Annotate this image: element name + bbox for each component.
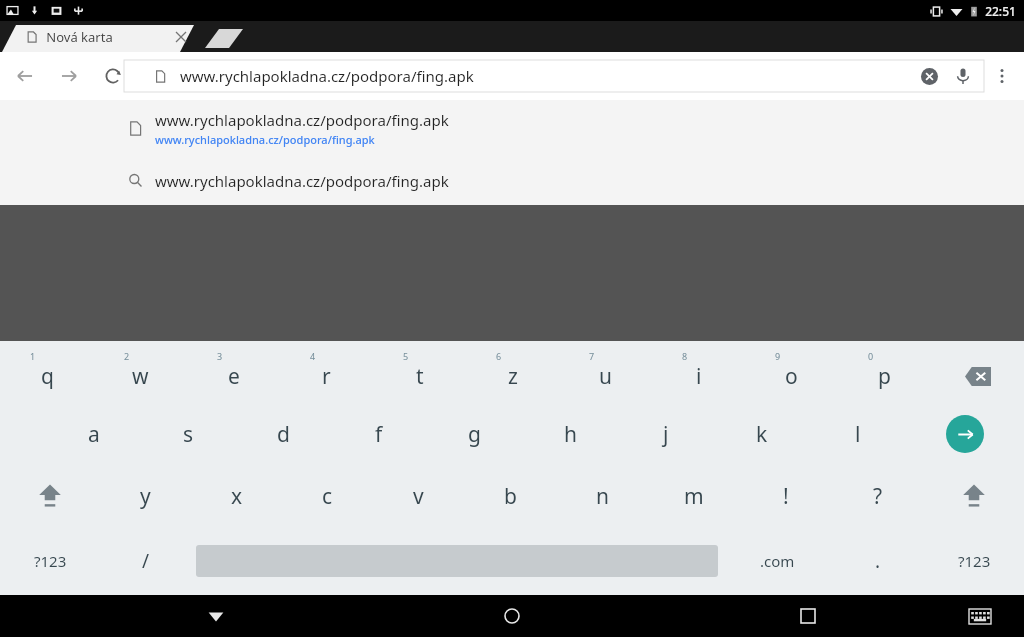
staticText: f xyxy=(375,420,383,449)
staticText: www.rychlapokladna.cz/podpora/fing.apk xyxy=(180,66,474,86)
staticText: g xyxy=(468,420,481,449)
button[interactable]: Close tab xyxy=(171,27,191,47)
staticText: 6 xyxy=(496,350,502,362)
button[interactable]: Backspace xyxy=(931,341,1024,403)
button[interactable]: ?123 xyxy=(0,527,100,595)
staticText: 8 xyxy=(682,350,688,362)
staticText: ? xyxy=(873,482,883,511)
button[interactable]: 8 xyxy=(652,341,745,403)
button[interactable]: h xyxy=(522,403,618,465)
button[interactable]: a xyxy=(46,403,141,465)
button[interactable]: Back xyxy=(192,595,240,637)
button[interactable]: Space xyxy=(192,527,722,595)
staticText: l xyxy=(855,420,861,449)
button[interactable]: 9 xyxy=(745,341,838,403)
button[interactable]: 1 xyxy=(0,341,94,403)
button[interactable]: 2 xyxy=(94,341,187,403)
staticText: u xyxy=(599,362,612,391)
button[interactable]: 6 xyxy=(466,341,559,403)
staticText: Nová karta xyxy=(46,28,113,46)
staticText: p xyxy=(878,362,891,391)
button[interactable]: j xyxy=(618,403,714,465)
staticText: k xyxy=(756,420,768,449)
button[interactable]: ?123 xyxy=(924,527,1024,595)
button[interactable]: 0 xyxy=(838,341,931,403)
button[interactable]: Voice search xyxy=(946,60,980,92)
button[interactable]: / xyxy=(100,527,192,595)
staticText: j xyxy=(663,420,669,449)
staticText: x xyxy=(231,482,243,511)
button[interactable]: Nová karta xyxy=(26,21,191,52)
button[interactable]: www.rychlapokladna.cz/podpora/fing.apk xyxy=(0,156,1024,205)
button[interactable]: n xyxy=(556,465,648,527)
button[interactable]: y xyxy=(100,465,191,527)
button[interactable]: b xyxy=(464,465,556,527)
button[interactable]: Hide keyboard xyxy=(960,596,1000,636)
button[interactable]: www.rychlapokladna.cz/podpora/fing.apk xyxy=(0,100,1024,156)
staticText: 9 xyxy=(775,350,781,362)
staticText: / xyxy=(142,548,150,574)
staticText: a xyxy=(88,420,100,449)
button[interactable]: 3 xyxy=(187,341,280,403)
button[interactable]: More options xyxy=(980,54,1024,98)
button[interactable]: Recent apps xyxy=(784,595,832,637)
button[interactable]: Go xyxy=(906,403,1024,465)
staticText: b xyxy=(504,482,517,511)
button[interactable]: . xyxy=(832,527,924,595)
staticText: y xyxy=(140,482,151,511)
staticText: 2 xyxy=(124,350,130,362)
button[interactable]: d xyxy=(236,403,331,465)
staticText: q xyxy=(41,362,54,391)
staticText: s xyxy=(183,420,194,449)
staticText: z xyxy=(508,362,518,391)
button[interactable]: k xyxy=(714,403,810,465)
button[interactable]: Back xyxy=(8,59,42,93)
button[interactable]: x xyxy=(191,465,282,527)
button[interactable]: Clear xyxy=(912,60,946,92)
staticText: h xyxy=(564,420,577,449)
staticText: 5 xyxy=(403,350,409,362)
staticText: d xyxy=(277,420,290,449)
staticText: o xyxy=(785,362,798,391)
button[interactable]: m xyxy=(648,465,740,527)
staticText: e xyxy=(228,362,240,391)
staticText: 7 xyxy=(589,350,595,362)
button[interactable]: s xyxy=(141,403,236,465)
staticText: . xyxy=(875,548,881,574)
staticText: .com xyxy=(760,551,795,571)
button[interactable]: v xyxy=(373,465,464,527)
staticText: i xyxy=(696,362,702,391)
staticText: v xyxy=(413,482,424,511)
staticText: 4 xyxy=(310,350,316,362)
button[interactable]: g xyxy=(426,403,522,465)
button[interactable]: 7 xyxy=(559,341,652,403)
button[interactable]: c xyxy=(282,465,373,527)
staticText: www.rychlapokladna.cz/podpora/fing.apk xyxy=(155,171,449,191)
staticText: ?123 xyxy=(34,551,67,571)
button[interactable]: ! xyxy=(740,465,832,527)
staticText: w xyxy=(132,362,149,391)
button[interactable]: ? xyxy=(832,465,924,527)
staticText: 3 xyxy=(217,350,223,362)
button[interactable]: Shift xyxy=(0,465,100,527)
button[interactable]: .com xyxy=(722,527,832,595)
button[interactable]: Shift xyxy=(924,465,1024,527)
button[interactable]: 5 xyxy=(373,341,466,403)
staticText: 22:51 xyxy=(985,3,1016,19)
staticText: c xyxy=(322,482,333,511)
staticText: t xyxy=(416,362,424,391)
button[interactable]: www.rychlapokladna.cz/podpora/fing.apk xyxy=(140,60,980,92)
staticText: www.rychlapokladna.cz/podpora/fing.apk xyxy=(155,132,375,147)
button[interactable]: f xyxy=(331,403,426,465)
staticText: 1 xyxy=(30,350,36,362)
staticText: r xyxy=(322,362,331,391)
staticText: ?123 xyxy=(958,551,991,571)
staticText: m xyxy=(684,482,704,511)
button[interactable]: Home xyxy=(488,595,536,637)
staticText: www.rychlapokladna.cz/podpora/fing.apk xyxy=(155,110,449,130)
button[interactable]: Forward xyxy=(52,59,86,93)
button[interactable]: l xyxy=(810,403,906,465)
button[interactable]: Reload xyxy=(96,59,130,93)
staticText: ! xyxy=(783,482,789,511)
button[interactable]: 4 xyxy=(280,341,373,403)
